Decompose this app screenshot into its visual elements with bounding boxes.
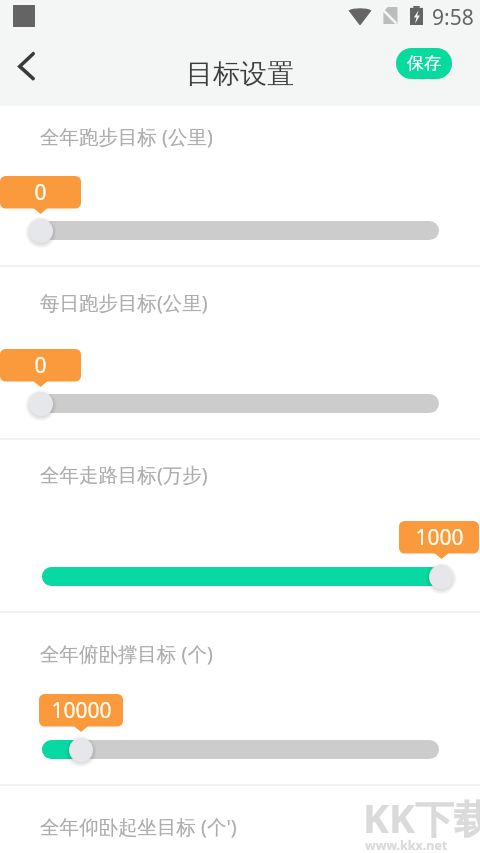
- staticText: 9:58: [432, 3, 474, 32]
- button[interactable]: 全年跑步目标 (公里): [0, 106, 480, 266]
- staticText: 0: [34, 178, 47, 207]
- staticText: 全年仰卧起坐目标 (个'): [40, 813, 237, 840]
- staticText: www.kkx.net: [365, 837, 448, 853]
- staticText: 全年走路目标(万步): [40, 461, 208, 488]
- staticText: 10000: [51, 696, 112, 725]
- button[interactable]: Back: [2, 38, 50, 102]
- button[interactable]: 保存: [396, 48, 452, 79]
- staticText: 1000: [415, 523, 464, 552]
- staticText: 每日跑步目标(公里): [40, 289, 208, 316]
- staticText: 全年跑步目标 (公里): [40, 123, 213, 150]
- button[interactable]: 每日跑步目标(公里): [0, 266, 480, 439]
- staticText: 目标设置: [186, 57, 294, 91]
- staticText: KK下载: [363, 791, 480, 844]
- button[interactable]: 全年俯卧撑目标 (个): [0, 612, 480, 785]
- staticText: 0: [34, 351, 47, 380]
- staticText: 保存: [407, 53, 441, 74]
- button[interactable]: 全年走路目标(万步): [0, 439, 480, 612]
- staticText: 全年俯卧撑目标 (个): [40, 640, 213, 667]
